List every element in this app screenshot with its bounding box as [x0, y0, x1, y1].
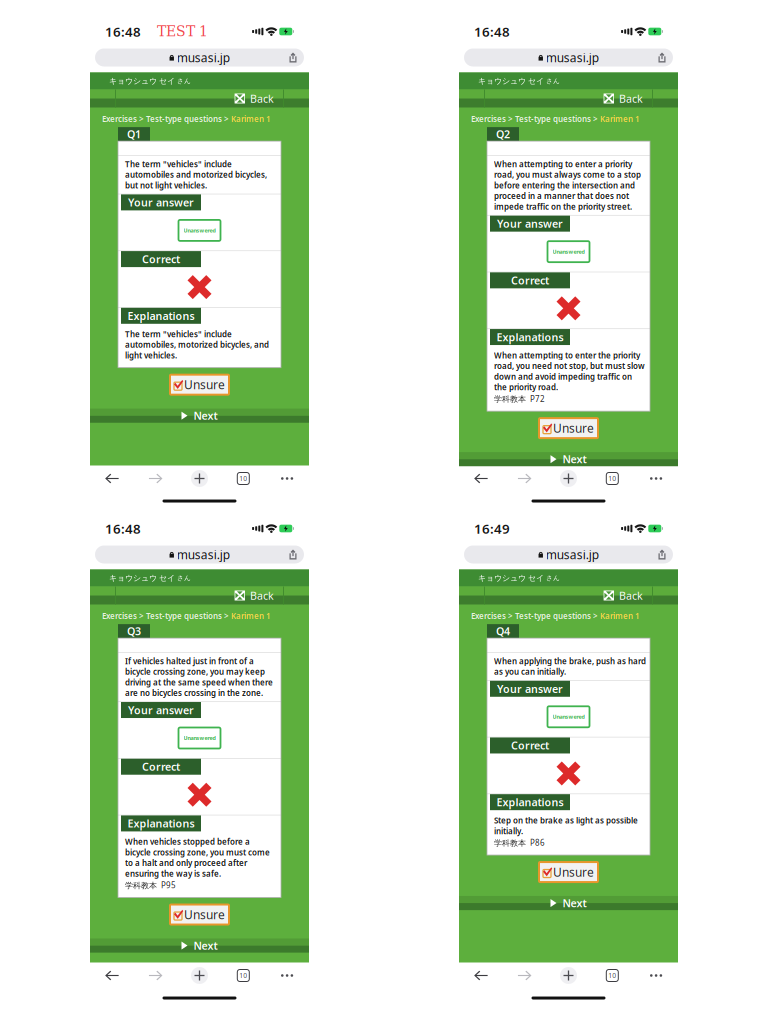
- button[interactable]: Back: [90, 467, 134, 489]
- staticText: Back: [619, 588, 643, 603]
- staticText: Unsure: [553, 864, 594, 880]
- staticText: musasi.jp: [546, 49, 599, 65]
- button[interactable]: Back: [235, 89, 274, 107]
- staticText: キョウシュウ セイ: [478, 76, 544, 86]
- staticText: Explanations: [127, 309, 194, 323]
- button[interactable]: More: [634, 467, 678, 489]
- staticText: Karimen 1: [600, 113, 640, 124]
- button[interactable]: Next: [459, 452, 678, 466]
- staticText: Back: [250, 91, 274, 106]
- staticText: 16:48: [105, 520, 141, 537]
- staticText: Exercises > Test-type questions >: [102, 113, 231, 124]
- staticText: Explanations: [496, 795, 563, 809]
- staticText: キョウシュウ セイ: [109, 76, 175, 86]
- button[interactable]: Back: [604, 586, 643, 604]
- staticText: Next: [193, 409, 217, 423]
- staticText: musasi.jp: [546, 546, 599, 562]
- staticText: When vehicles stopped before a bicycle c…: [125, 836, 270, 879]
- button[interactable]: Unsure: [170, 904, 229, 924]
- staticText: Exercises > Test-type questions >: [102, 610, 231, 621]
- staticText: When applying the brake, push as hard as…: [494, 656, 646, 677]
- button[interactable]: Share: [651, 48, 673, 66]
- button[interactable]: Back: [459, 964, 503, 986]
- staticText: 16:48: [474, 23, 510, 40]
- button[interactable]: Back: [235, 586, 274, 604]
- button[interactable]: Next: [459, 896, 678, 910]
- button[interactable]: Share: [282, 545, 304, 563]
- staticText: Unsure: [553, 420, 594, 436]
- button[interactable]: Tabs: [221, 964, 265, 986]
- staticText: Your answer: [128, 703, 194, 717]
- staticText: The term "vehicles" include automobiles,…: [125, 329, 269, 361]
- staticText: Explanations: [127, 816, 194, 830]
- button[interactable]: Back: [604, 89, 643, 107]
- staticText: Your answer: [497, 682, 563, 696]
- button[interactable]: New Tab: [178, 964, 221, 986]
- staticText: Correct: [142, 760, 180, 774]
- staticText: キョウシュウ セイ: [109, 573, 175, 583]
- staticText: 10: [239, 474, 247, 483]
- button[interactable]: New Tab: [547, 964, 590, 986]
- button[interactable]: Next: [90, 409, 309, 423]
- staticText: さん: [546, 574, 560, 582]
- staticText: Next: [562, 896, 586, 910]
- staticText: Correct: [511, 738, 549, 753]
- staticText: Q3: [127, 624, 141, 638]
- button[interactable]: New Tab: [547, 467, 590, 489]
- button[interactable]: Share: [282, 48, 304, 66]
- button[interactable]: Next: [90, 938, 309, 952]
- staticText: When attempting to enter a priority road…: [494, 159, 641, 212]
- staticText: Step on the brake as light as possible i…: [494, 815, 638, 836]
- button[interactable]: Unsure: [170, 375, 229, 395]
- staticText: さん: [177, 77, 191, 85]
- staticText: キョウシュウ セイ: [478, 573, 544, 583]
- button[interactable]: More: [634, 964, 678, 986]
- button[interactable]: Tabs: [590, 467, 634, 489]
- staticText: Karimen 1: [231, 610, 271, 621]
- staticText: Correct: [511, 273, 549, 287]
- staticText: 16:49: [474, 520, 510, 537]
- staticText: Your answer: [128, 195, 194, 209]
- staticText: 学科教本 P95: [125, 880, 176, 890]
- button[interactable]: Back: [459, 467, 503, 489]
- button[interactable]: More: [265, 467, 309, 489]
- button[interactable]: Forward: [134, 467, 178, 489]
- button[interactable]: More: [265, 964, 309, 986]
- button[interactable]: Tabs: [590, 964, 634, 986]
- staticText: TEST 1: [157, 23, 208, 40]
- staticText: musasi.jp: [177, 546, 230, 562]
- staticText: Unanswered: [183, 734, 215, 742]
- button[interactable]: New Tab: [178, 467, 221, 489]
- staticText: Unanswered: [552, 713, 584, 720]
- button[interactable]: Share: [651, 545, 673, 563]
- staticText: Exercises > Test-type questions >: [471, 610, 600, 621]
- button[interactable]: Forward: [503, 467, 547, 489]
- staticText: 10: [608, 971, 616, 980]
- staticText: Back: [619, 91, 643, 106]
- staticText: 10: [239, 971, 247, 980]
- staticText: Exercises > Test-type questions >: [471, 113, 600, 124]
- staticText: Next: [562, 452, 586, 466]
- button[interactable]: Tabs: [221, 467, 265, 489]
- staticText: さん: [177, 574, 191, 582]
- staticText: When attempting to enter the priority ro…: [494, 350, 645, 392]
- staticText: 学科教本 P72: [494, 393, 545, 404]
- staticText: Your answer: [497, 217, 563, 231]
- button[interactable]: Back: [90, 964, 134, 986]
- staticText: Unsure: [184, 377, 225, 393]
- staticText: Next: [193, 938, 217, 953]
- button[interactable]: Forward: [503, 964, 547, 986]
- staticText: Unanswered: [552, 248, 584, 255]
- button[interactable]: Forward: [134, 964, 178, 986]
- staticText: Explanations: [496, 330, 563, 344]
- staticText: Unsure: [184, 907, 225, 922]
- button[interactable]: Unsure: [539, 418, 598, 438]
- button[interactable]: Unsure: [539, 862, 598, 882]
- staticText: Q1: [127, 127, 141, 141]
- staticText: 学科教本 P86: [494, 837, 545, 848]
- staticText: Unanswered: [183, 227, 215, 234]
- staticText: Back: [250, 588, 274, 603]
- staticText: Correct: [142, 252, 180, 266]
- staticText: musasi.jp: [177, 49, 230, 65]
- staticText: Karimen 1: [600, 610, 640, 621]
